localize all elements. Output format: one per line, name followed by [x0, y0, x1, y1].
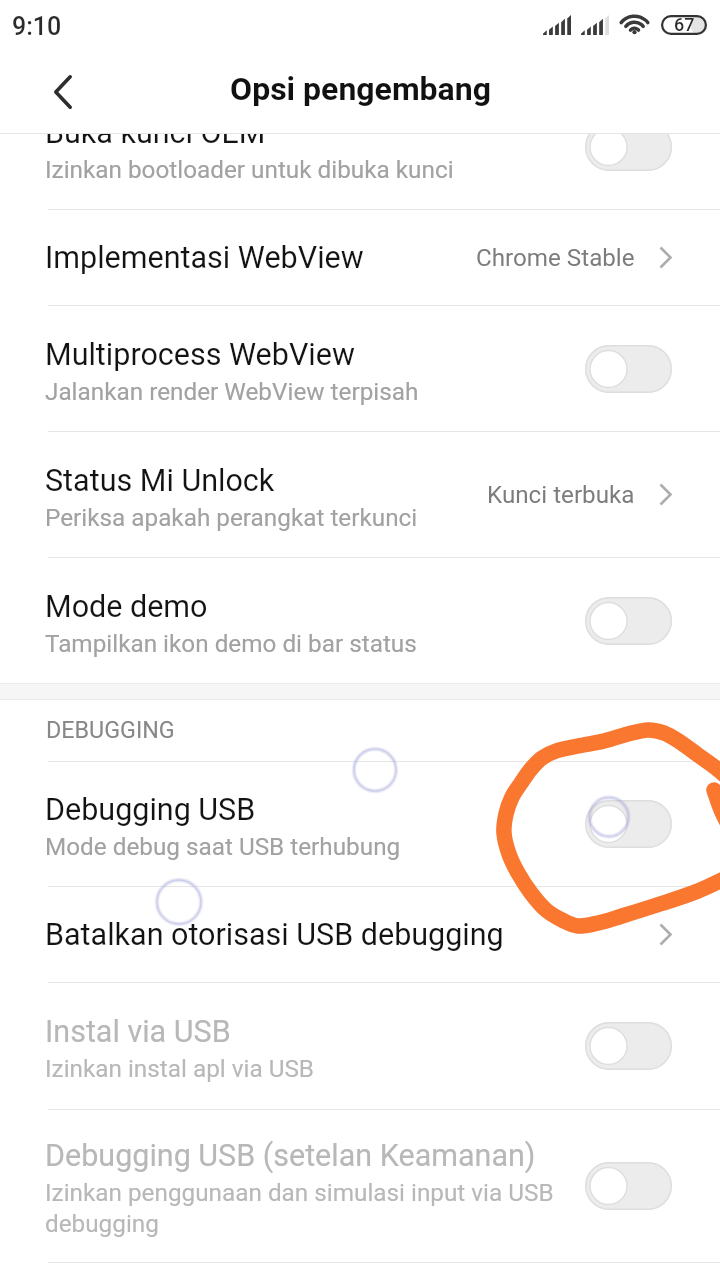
button[interactable]: Kembali [25, 54, 101, 130]
staticText: Mode demo [45, 589, 208, 625]
staticText: Opsi pengembang [230, 70, 491, 108]
staticText: Debugging USB (setelan Keamanan) [45, 1138, 536, 1174]
staticText: Izinkan penggunaan dan simulasi input vi… [45, 1178, 554, 1238]
staticText: Buka kunci OEM [45, 115, 266, 151]
staticText: Chrome Stable [476, 244, 635, 272]
staticText: Tampilkan ikon demo di bar status [45, 629, 417, 657]
staticText: Jalankan render WebView terpisah [45, 377, 419, 405]
button[interactable]: Debugging USB (setelan Keamanan) [0, 1110, 720, 1262]
button[interactable]: Alihkan [585, 123, 672, 171]
staticText: Instal via USB [45, 1014, 231, 1050]
button[interactable]: Implementasi WebView [0, 210, 720, 305]
button[interactable]: Alihkan [585, 800, 672, 848]
button[interactable]: Alihkan [585, 345, 672, 393]
staticText: Implementasi WebView [45, 240, 364, 276]
staticText: Multiprocess WebView [45, 337, 355, 373]
button[interactable]: Buka kunci OEM [0, 84, 720, 209]
button[interactable]: Alihkan [585, 1022, 672, 1070]
staticText: Mode debug saat USB terhubung [45, 832, 401, 860]
button[interactable]: Alihkan [585, 1162, 672, 1210]
button[interactable]: Batalkan otorisasi USB debugging [0, 887, 720, 982]
button[interactable]: Mode demo [0, 558, 720, 683]
staticText: Status Mi Unlock [45, 463, 275, 499]
staticText: Izinkan instal apl via USB [45, 1054, 314, 1082]
staticText: Debugging USB [45, 792, 256, 828]
button[interactable]: Status Mi Unlock [0, 432, 720, 557]
staticText: Kunci terbuka [487, 481, 635, 509]
staticText: 9:10 [12, 12, 62, 41]
staticText: 67 [674, 14, 695, 35]
staticText: Periksa apakah perangkat terkunci [45, 503, 418, 531]
staticText: Izinkan bootloader untuk dibuka kunci [45, 155, 454, 183]
staticText: Batalkan otorisasi USB debugging [45, 917, 504, 953]
button[interactable]: Multiprocess WebView [0, 306, 720, 431]
button[interactable]: Alihkan [585, 597, 672, 645]
staticText: DEBUGGING [46, 716, 175, 743]
button[interactable]: Instal via USB [0, 983, 720, 1109]
button[interactable]: Debugging USB [0, 762, 720, 886]
